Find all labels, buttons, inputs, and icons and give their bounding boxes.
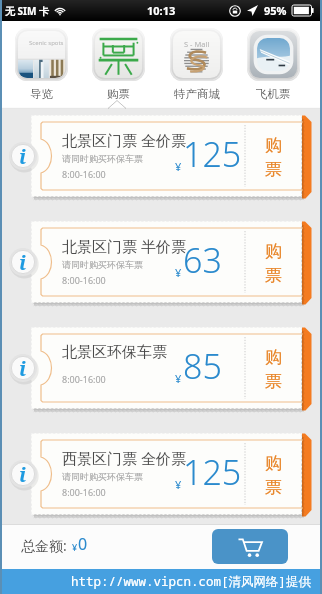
staticText: 请同时购买环保车票 [62,259,143,270]
staticText: ¥ [175,477,182,492]
button[interactable]: 购 [265,347,282,392]
staticText: 购 [265,347,282,368]
staticText: ¥ [175,159,182,174]
button[interactable]: S - Mall [170,28,223,101]
staticText: 北景区门票 全价票 [62,130,186,150]
staticText: 票 [265,371,282,392]
staticText: 购 [265,453,282,474]
button[interactable]: i [0,432,322,518]
staticText: 购票 [107,87,130,101]
staticText: ¥ [72,541,78,553]
staticText: 票 [265,265,282,286]
staticText: S - Mall [184,39,210,49]
staticText: 10:13 [147,3,176,18]
staticText: 无 SIM 卡 [5,4,50,18]
button[interactable]: Scenic spots [15,28,68,101]
staticText: 北景区门票 半价票 [62,236,186,256]
staticText: 票 [265,477,282,498]
button[interactable]: 购 [265,241,282,286]
staticText: 8:00-16:00 [62,486,106,498]
staticText: i [19,355,27,382]
staticText: ¥ [175,371,182,386]
staticText: 请同时购买环保车票 [62,153,143,164]
staticText: 飞机票 [256,87,291,101]
staticText: 购 [265,241,282,262]
staticText: 8:00-16:00 [62,168,106,180]
staticText: 95% [264,3,287,18]
button[interactable]: 购 [265,453,282,498]
button[interactable]: i [0,326,322,412]
staticText: 125 [183,131,242,177]
button[interactable]: 购票 [92,28,145,101]
staticText: 请同时购买环保车票 [62,471,143,482]
staticText: 63 [183,237,222,283]
button[interactable]: Shopping cart [212,529,288,564]
button[interactable]: 飞机票 [247,28,300,101]
button[interactable]: i [0,220,322,306]
staticText: 85 [183,343,222,389]
staticText: i [19,461,27,488]
staticText: 导览 [30,87,53,101]
staticText: 总金额: [21,536,67,555]
staticText: Scenic spots [29,39,64,47]
staticText: 特产商城 [174,87,220,101]
staticText: 0 [78,533,88,555]
staticText: 125 [183,449,242,495]
staticText: 北景区环保车票 [62,343,167,362]
button[interactable]: 购 [265,135,282,180]
staticText: ¥ [175,265,182,280]
staticText: 购 [265,135,282,156]
staticText: 西景区门票 全价票 [62,448,186,468]
staticText: 8:00-16:00 [62,373,106,385]
staticText: 8:00-16:00 [62,274,106,286]
staticText: 票 [265,159,282,180]
staticText: http://www.vipcn.com[清风网络]提供 [71,573,312,590]
button[interactable]: i [0,114,322,200]
staticText: i [19,249,27,276]
staticText: i [19,143,27,170]
